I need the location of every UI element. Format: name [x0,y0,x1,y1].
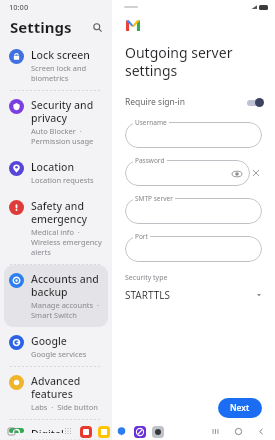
staticText: Location requests [31,175,94,185]
button[interactable]: Recent apps [6,426,17,437]
button[interactable] [125,198,262,224]
staticText: Advanced features [31,374,102,401]
staticText: Outgoing server settings [125,43,275,80]
staticText: Security and privacy [31,98,102,125]
button[interactable] [125,236,262,262]
button[interactable]: Lock screen [4,41,108,90]
staticText: Location [31,160,75,174]
staticText: 10:00 [9,2,29,12]
button[interactable] [125,160,250,186]
button[interactable]: Show password [231,168,242,179]
staticText: Screen lock and biometrics [31,63,102,83]
button[interactable] [97,425,110,438]
staticText: Lock screen [31,48,90,62]
button[interactable] [79,425,92,438]
staticText: SMTP server [135,194,173,203]
staticText: Next [230,402,250,414]
staticText: Require sign-in [125,96,186,108]
staticText: Settings [10,17,72,37]
button[interactable]: Digital Wellbeing and parental controls [4,420,108,440]
button[interactable] [115,425,128,438]
staticText: Auto Blocker · Permission usage [31,126,102,146]
button[interactable] [133,425,146,438]
button[interactable]: Accounts and backup [4,265,108,327]
button[interactable]: Recents [209,425,222,438]
button[interactable] [151,425,164,438]
button[interactable]: Advanced features [4,367,108,419]
staticText: Username [135,118,167,127]
button[interactable]: Search settings [90,20,104,34]
button[interactable]: Back [255,425,268,438]
button[interactable]: Google [4,327,108,366]
button[interactable]: Safety and emergency [4,192,108,264]
button[interactable]: Require sign-in [112,94,275,110]
staticText: Port [135,232,148,241]
button[interactable]: Home [232,425,245,438]
staticText: Manage accounts · Smart Switch [31,300,102,320]
button[interactable]: Clear password [250,160,262,186]
staticText: Security type [125,273,168,283]
staticText: Labs · Side button [31,402,98,412]
staticText: Google [31,334,67,348]
staticText: Google services [31,349,87,359]
staticText: Digital Wellbeing and parental controls [31,427,102,433]
button[interactable]: Location [4,153,108,192]
button[interactable]: Security and privacy [4,91,108,153]
staticText: Safety and emergency [31,199,102,226]
staticText: Medical info · Wireless emergency alerts [31,227,102,257]
button[interactable]: All apps [62,425,74,437]
staticText: STARTTLS [125,288,171,302]
button[interactable] [125,122,262,148]
button[interactable]: Next [218,398,262,418]
staticText: Password [135,156,165,165]
button[interactable]: STARTTLS [125,288,262,302]
staticText: Accounts and backup [31,272,102,299]
